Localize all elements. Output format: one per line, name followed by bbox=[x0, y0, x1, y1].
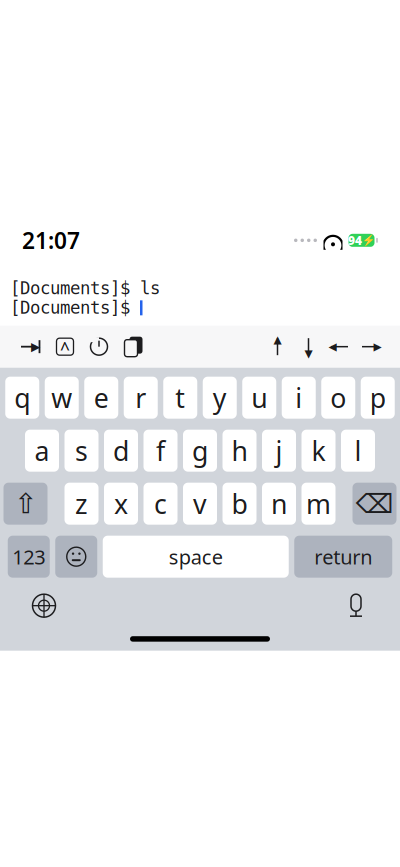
button[interactable]: w bbox=[45, 377, 79, 419]
button[interactable]: Emoji bbox=[55, 536, 97, 578]
button[interactable]: Up bbox=[262, 330, 293, 364]
staticText: a bbox=[34, 433, 49, 468]
button[interactable]: o bbox=[321, 377, 355, 419]
staticText: j bbox=[275, 433, 282, 468]
button[interactable]: m bbox=[301, 483, 335, 525]
staticText: ▶ bbox=[31, 340, 40, 353]
staticText: ⇧ bbox=[14, 488, 37, 520]
staticText: space bbox=[169, 543, 223, 570]
staticText: c bbox=[154, 486, 167, 521]
staticText: t bbox=[175, 380, 185, 415]
button[interactable]: i bbox=[282, 377, 316, 419]
staticText: u bbox=[251, 380, 267, 415]
button[interactable]: c bbox=[143, 483, 177, 525]
button[interactable]: r bbox=[124, 377, 158, 419]
button[interactable]: Tab bbox=[14, 330, 48, 364]
button[interactable]: a bbox=[25, 430, 59, 472]
button[interactable]: Delete bbox=[352, 483, 396, 525]
staticText: x bbox=[114, 486, 128, 521]
staticText: r bbox=[135, 380, 146, 415]
button[interactable]: p bbox=[361, 377, 395, 419]
staticText: 21:07 bbox=[22, 225, 80, 255]
button[interactable]: History bbox=[82, 330, 116, 364]
staticText: z bbox=[75, 486, 88, 521]
staticText: m bbox=[306, 486, 331, 521]
button[interactable]: v bbox=[183, 483, 217, 525]
button[interactable]: space bbox=[103, 536, 289, 578]
staticText: w bbox=[51, 380, 72, 415]
button[interactable]: Switch keyboard bbox=[22, 586, 66, 626]
staticText: ⌫ bbox=[355, 488, 393, 519]
staticText: s bbox=[75, 433, 88, 468]
staticText: b bbox=[231, 486, 247, 521]
button[interactable]: n bbox=[262, 483, 296, 525]
staticText: g bbox=[192, 433, 208, 468]
staticText: ^ bbox=[60, 337, 70, 360]
button[interactable]: g bbox=[183, 430, 217, 472]
button[interactable]: Control bbox=[48, 330, 82, 364]
button[interactable]: k bbox=[301, 430, 335, 472]
button[interactable]: x bbox=[104, 483, 138, 525]
button[interactable]: q bbox=[5, 377, 39, 419]
staticText: d bbox=[113, 433, 129, 468]
staticText: ▶ bbox=[373, 341, 381, 353]
staticText: v bbox=[193, 486, 207, 521]
button[interactable]: j bbox=[262, 430, 296, 472]
staticText: i bbox=[295, 380, 302, 415]
button[interactable]: Left bbox=[324, 330, 355, 364]
staticText: ⚡ bbox=[362, 234, 375, 246]
button[interactable]: Down bbox=[293, 330, 324, 364]
staticText: return bbox=[314, 543, 372, 570]
button[interactable]: l bbox=[341, 430, 375, 472]
button[interactable]: y bbox=[203, 377, 237, 419]
staticText: [Documents]$ bbox=[10, 298, 140, 318]
button[interactable]: return bbox=[294, 536, 392, 578]
button[interactable]: Dictation bbox=[334, 586, 378, 626]
staticText: ▲ bbox=[273, 334, 281, 346]
button[interactable]: Right bbox=[355, 330, 386, 364]
button[interactable]: t bbox=[163, 377, 197, 419]
staticText: e bbox=[94, 380, 109, 415]
button[interactable]: Paste bbox=[116, 330, 150, 364]
staticText: p bbox=[370, 380, 386, 415]
staticText: 94 bbox=[348, 232, 362, 248]
button[interactable]: Shift bbox=[3, 483, 47, 525]
staticText: y bbox=[213, 380, 227, 415]
button[interactable]: s bbox=[64, 430, 98, 472]
staticText: [Documents]$ ls bbox=[10, 278, 160, 298]
staticText: f bbox=[156, 433, 165, 468]
button[interactable]: u bbox=[242, 377, 276, 419]
button[interactable]: h bbox=[222, 430, 256, 472]
button[interactable]: 123 bbox=[8, 536, 50, 578]
button[interactable]: d bbox=[104, 430, 138, 472]
staticText: 123 bbox=[12, 543, 45, 570]
staticText: o bbox=[330, 380, 346, 415]
button[interactable]: z bbox=[64, 483, 98, 525]
staticText: q bbox=[14, 380, 30, 415]
button[interactable]: b bbox=[222, 483, 256, 525]
staticText: n bbox=[271, 486, 287, 521]
button[interactable]: e bbox=[84, 377, 118, 419]
button[interactable]: f bbox=[143, 430, 177, 472]
staticText: ◀ bbox=[328, 341, 336, 353]
staticText: ▼ bbox=[304, 348, 312, 360]
staticText: l bbox=[354, 433, 361, 468]
staticText: h bbox=[231, 433, 247, 468]
staticText: k bbox=[311, 433, 325, 468]
